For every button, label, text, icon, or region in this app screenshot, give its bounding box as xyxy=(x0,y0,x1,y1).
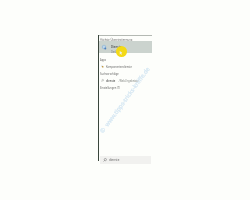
staticText: Komponentendienste xyxy=(106,65,132,68)
other: Mauszeiger xyxy=(116,46,127,57)
button[interactable]: dienste xyxy=(100,156,151,164)
button[interactable]: Höchste Übereinstimmung xyxy=(100,37,150,41)
button[interactable]: dienste xyxy=(100,78,152,83)
button[interactable]: Dienste xyxy=(99,41,152,53)
staticText: Dienste xyxy=(111,45,122,49)
button[interactable]: Einstellungen (7) xyxy=(100,85,150,89)
staticText: © www.tipps-tricks-kniffe.de xyxy=(98,65,152,135)
staticText: Desktop-App xyxy=(111,50,127,53)
staticText: dienste xyxy=(106,79,116,82)
staticText: Apps xyxy=(100,58,106,61)
button[interactable]: Komponentendienste xyxy=(100,64,152,69)
staticText: dienste xyxy=(109,158,120,162)
staticText: - Web-Ergebnisse xyxy=(118,79,139,82)
staticText: Einstellungen (7) xyxy=(100,86,120,89)
staticText: Suchvorschläge xyxy=(100,72,119,75)
staticText: Höchste Übereinstimmung xyxy=(100,38,133,41)
